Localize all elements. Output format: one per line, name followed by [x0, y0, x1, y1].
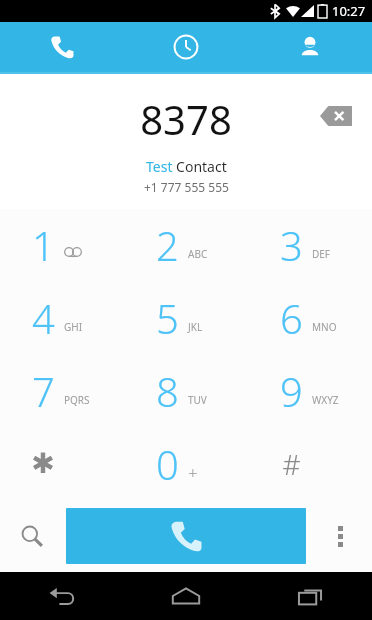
staticText: 6 [280, 291, 303, 345]
staticText: PQRS [64, 393, 90, 407]
button[interactable]: More options [318, 514, 362, 558]
staticText: Test Contact [146, 157, 227, 176]
button[interactable]: Dialpad [0, 22, 124, 72]
staticText: 4 [32, 291, 55, 345]
button[interactable]: Recent apps [248, 572, 372, 620]
button[interactable]: 3 [248, 209, 372, 281]
button[interactable]: Delete [316, 102, 356, 130]
staticText: ✱ [31, 447, 55, 480]
button[interactable]: 4 [0, 281, 124, 354]
staticText: 10:27 [332, 2, 366, 20]
button[interactable]: Call history [124, 22, 248, 72]
button[interactable]: 1 [0, 209, 124, 281]
staticText: 8378 [140, 92, 232, 146]
button[interactable]: 5 [124, 281, 248, 354]
button[interactable]: 6 [248, 281, 372, 354]
button[interactable]: Search [10, 514, 54, 558]
staticText: DEF [312, 247, 331, 261]
button[interactable]: Back [0, 572, 124, 620]
button[interactable]: 8 [124, 354, 248, 427]
staticText: 1 [32, 218, 55, 272]
staticText: GHI [64, 320, 83, 334]
button[interactable]: # [248, 427, 372, 500]
staticText: MNO [312, 320, 337, 334]
button[interactable]: 7 [0, 354, 124, 427]
button[interactable]: 0 [124, 427, 248, 500]
button[interactable]: ✱ [0, 427, 124, 500]
staticText: 3 [280, 218, 303, 272]
staticText: # [282, 445, 301, 483]
staticText: WXYZ [312, 393, 339, 407]
staticText: 7 [32, 364, 55, 418]
button[interactable]: 2 [124, 209, 248, 281]
staticText: 2 [156, 218, 179, 272]
staticText: JKL [188, 320, 203, 334]
staticText: TUV [188, 393, 207, 407]
button[interactable]: 9 [248, 354, 372, 427]
staticText: +1 777 555 555 [144, 179, 229, 195]
staticText: 9 [280, 364, 303, 418]
staticText: + [188, 461, 198, 484]
staticText: ABC [188, 247, 208, 261]
staticText: 5 [156, 291, 179, 345]
staticText: 8 [156, 364, 179, 418]
button[interactable]: Contacts [248, 22, 372, 72]
button[interactable]: Home [124, 572, 248, 620]
button[interactable]: Call [66, 508, 306, 564]
staticText: 0 [156, 437, 179, 491]
